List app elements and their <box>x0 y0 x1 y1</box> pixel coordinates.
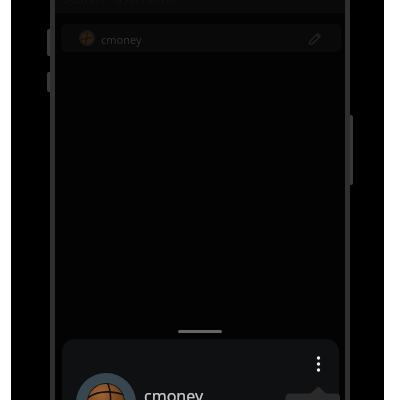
button[interactable] <box>306 347 331 375</box>
staticText: cmoney <box>144 385 204 400</box>
button[interactable] <box>285 380 341 400</box>
staticText: cmoney <box>101 32 142 47</box>
button[interactable]: cmoney <box>61 24 341 52</box>
button[interactable] <box>307 29 325 47</box>
